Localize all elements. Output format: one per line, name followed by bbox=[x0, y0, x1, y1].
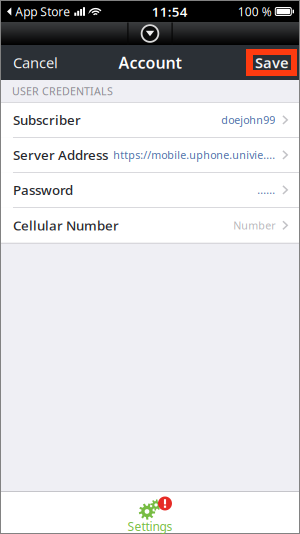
staticText: Account bbox=[118, 52, 181, 73]
staticText: https://mobile.uphone.univie.... bbox=[113, 148, 275, 162]
staticText: 100 % bbox=[238, 3, 272, 19]
button[interactable]: Server Address bbox=[1, 138, 299, 172]
staticText: Number bbox=[233, 218, 275, 232]
staticText: Save bbox=[255, 53, 289, 72]
staticText: Password bbox=[13, 181, 73, 199]
button[interactable]: Save bbox=[246, 49, 299, 76]
staticText: App Store bbox=[15, 3, 70, 19]
staticText: doejohn99 bbox=[221, 113, 275, 127]
staticText: ...... bbox=[257, 183, 275, 197]
staticText: USER CREDENTIALS bbox=[12, 84, 113, 98]
button[interactable]: Show notifications bbox=[133, 22, 167, 45]
button[interactable]: Subscriber bbox=[1, 103, 299, 137]
button[interactable]: Cellular Number bbox=[1, 208, 299, 243]
button[interactable]: Cancel bbox=[1, 46, 68, 79]
staticText: Cellular Number bbox=[13, 216, 119, 234]
staticText: Settings bbox=[127, 518, 172, 534]
button[interactable]: Password bbox=[1, 173, 299, 207]
staticText: Cancel bbox=[13, 53, 58, 72]
staticText: Subscriber bbox=[13, 111, 81, 129]
staticText: 11:54 bbox=[152, 3, 188, 20]
button[interactable]: Settings bbox=[115, 492, 185, 533]
staticText: Server Address bbox=[13, 146, 108, 164]
